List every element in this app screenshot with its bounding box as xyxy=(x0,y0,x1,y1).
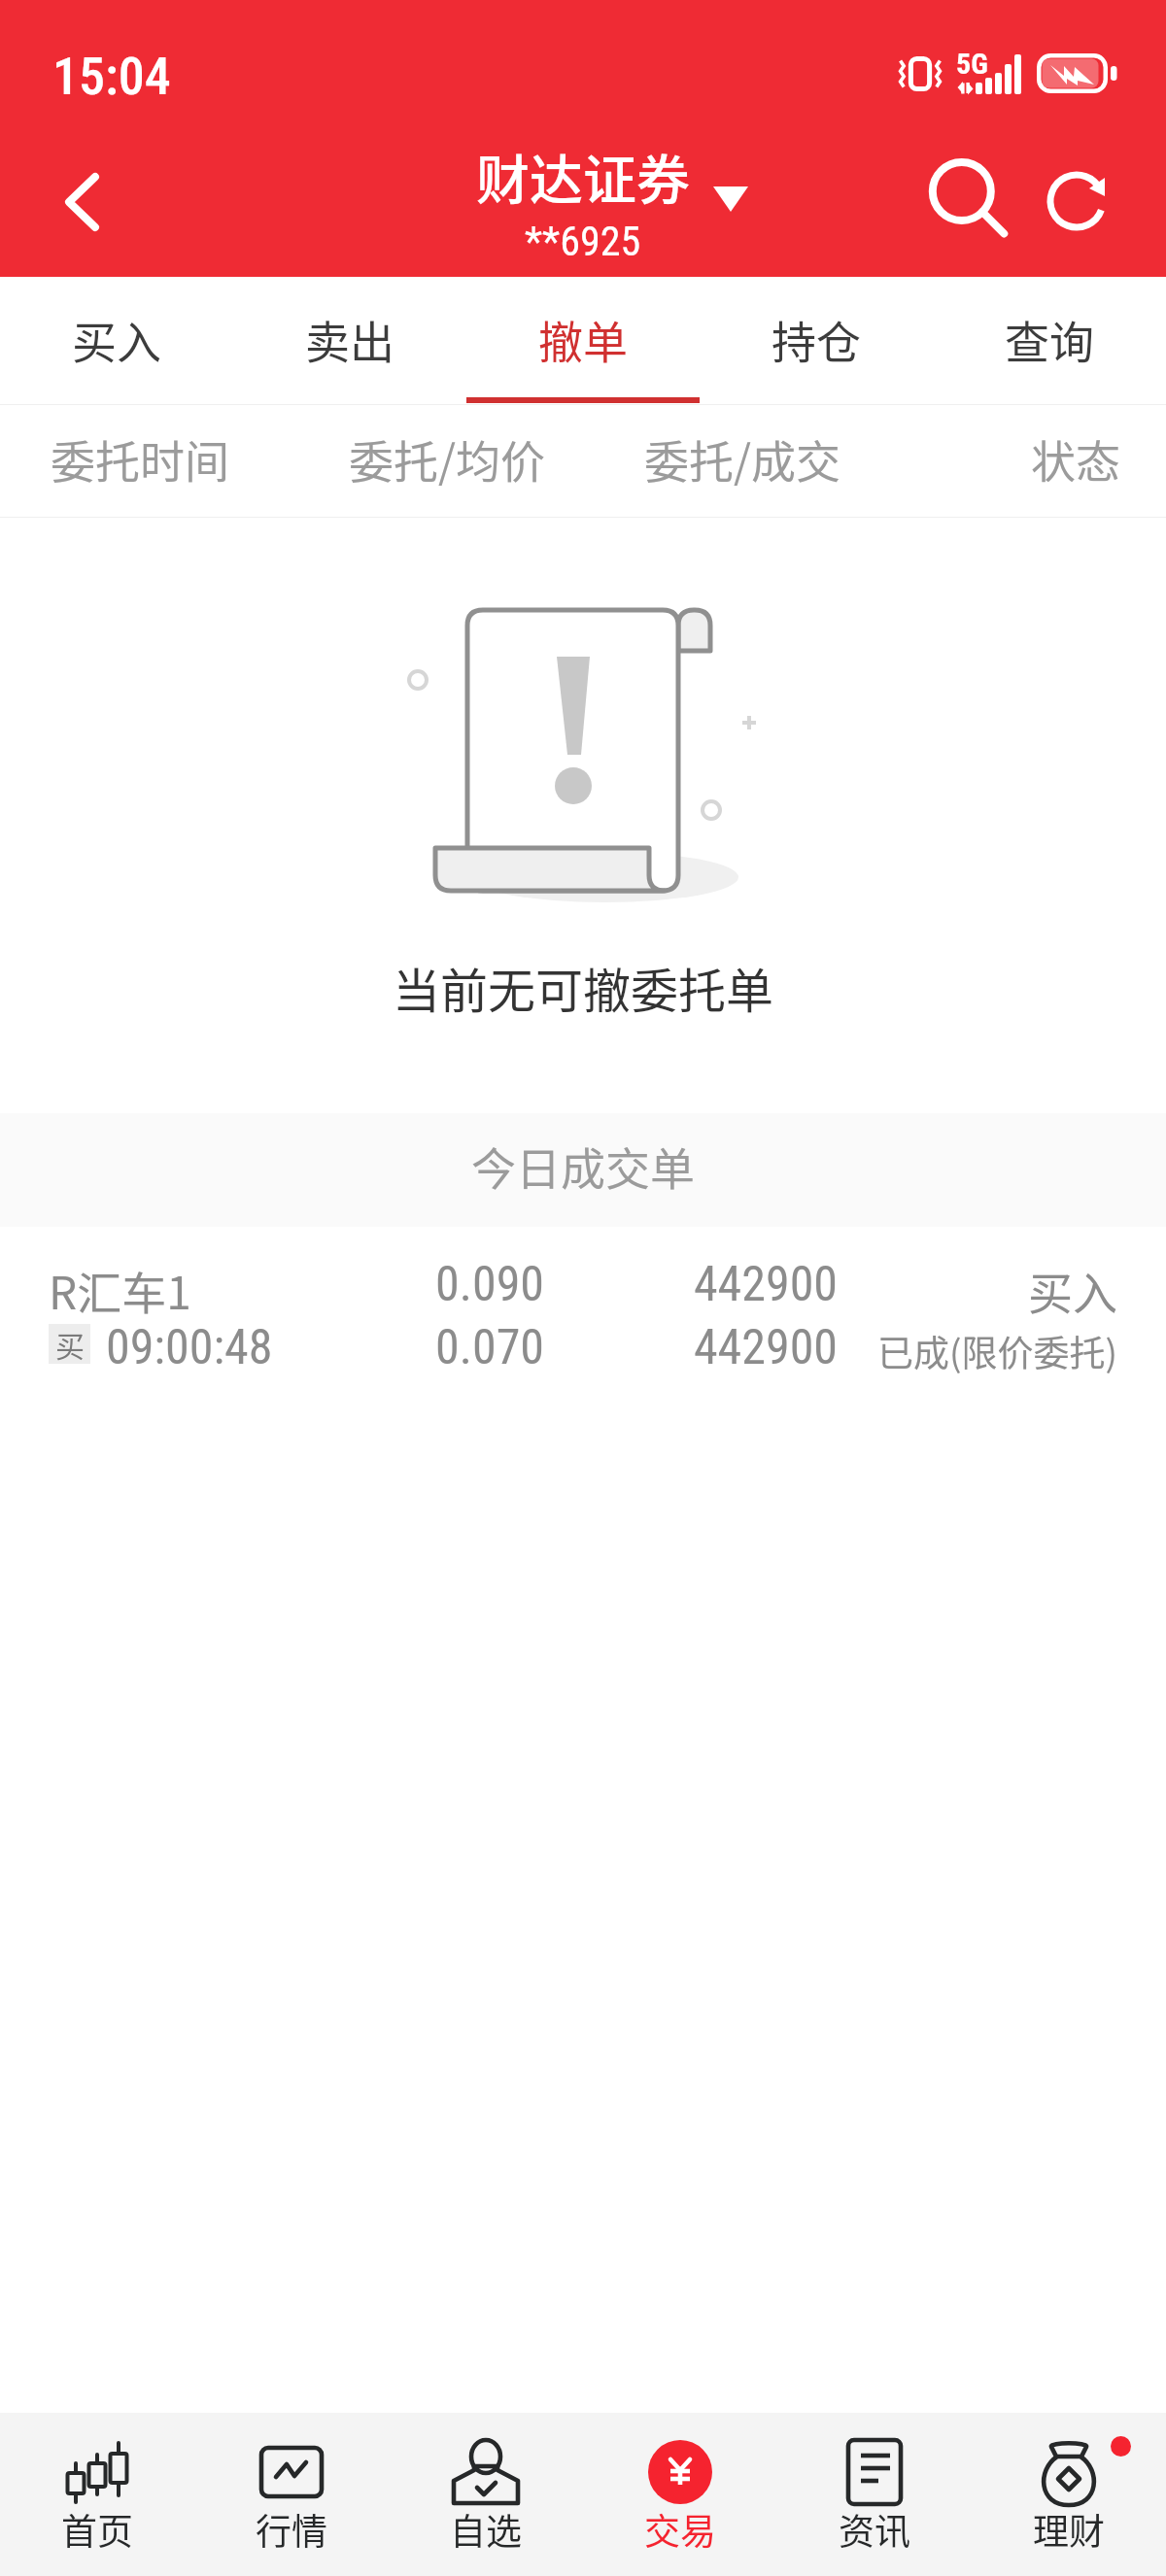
button[interactable]: 资讯 xyxy=(777,2413,972,2576)
button[interactable]: 财达证券 xyxy=(418,136,758,267)
button[interactable]: 买入 xyxy=(0,277,233,405)
button[interactable]: 自选 xyxy=(389,2413,583,2576)
button[interactable]: 理财 xyxy=(972,2413,1166,2576)
staticText: 5G xyxy=(956,47,988,81)
button[interactable]: 撤单 xyxy=(466,277,700,405)
staticText: R汇车1 xyxy=(49,1258,191,1323)
staticText: 442900 xyxy=(0,1256,838,1313)
staticText: 持仓 xyxy=(772,307,861,372)
staticText: 0.090 xyxy=(0,1256,544,1313)
staticText: 今日成交单 xyxy=(471,1134,695,1199)
staticText: 0.070 xyxy=(0,1319,544,1376)
button[interactable]: 首页 xyxy=(0,2413,194,2576)
staticText: 买入 xyxy=(0,1258,1117,1323)
staticText: 当前无可撤委托单 xyxy=(0,953,1166,1022)
button[interactable]: 卖出 xyxy=(233,277,466,405)
staticText: 行情 xyxy=(256,2503,327,2556)
staticText: 查询 xyxy=(1005,307,1094,372)
button[interactable]: Refresh xyxy=(1018,143,1135,259)
staticText: 撤单 xyxy=(538,307,628,372)
button[interactable]: Search xyxy=(910,142,1027,258)
staticText: 委托/成交 xyxy=(0,426,840,491)
button[interactable]: R汇车1 xyxy=(0,1227,1166,1402)
staticText: 买入 xyxy=(72,307,161,372)
staticText: 委托时间 xyxy=(51,426,229,491)
button[interactable]: 交易 xyxy=(583,2413,777,2576)
staticText: 委托/均价 xyxy=(0,426,545,491)
button[interactable]: 查询 xyxy=(933,277,1166,405)
staticText: 理财 xyxy=(1033,2503,1105,2556)
button[interactable]: Back xyxy=(23,144,140,260)
staticText: 自选 xyxy=(450,2503,522,2556)
staticText: **6925 xyxy=(525,218,641,265)
staticText: 交易 xyxy=(644,2503,716,2556)
staticText: 442900 xyxy=(0,1319,838,1376)
staticText: 15:04 xyxy=(52,46,171,107)
staticText: 财达证券 xyxy=(476,137,691,215)
staticText: 09:00:48 xyxy=(106,1319,273,1376)
button[interactable]: 持仓 xyxy=(700,277,933,405)
staticText: 资讯 xyxy=(839,2503,910,2556)
staticText: 状态 xyxy=(0,426,1120,491)
staticText: 买 xyxy=(55,1323,85,1363)
staticText: 首页 xyxy=(61,2503,133,2556)
staticText: 已成(限价委托) xyxy=(816,1325,1117,1377)
staticText: 卖出 xyxy=(305,307,394,372)
button[interactable]: 行情 xyxy=(194,2413,389,2576)
